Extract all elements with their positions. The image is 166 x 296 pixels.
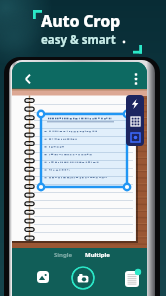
button[interactable]: Capture <box>71 266 95 290</box>
button[interactable]: Gallery <box>37 271 49 283</box>
staticText: Multiple <box>85 251 110 259</box>
staticText: easy & smart <box>41 32 116 48</box>
button[interactable]: More options <box>128 71 144 87</box>
button[interactable]: Grid <box>131 117 140 126</box>
staticText: Single <box>54 251 73 259</box>
staticText: Auto Crop <box>41 10 121 32</box>
button[interactable]: Single <box>52 250 75 260</box>
button[interactable]: Auto crop <box>131 133 140 142</box>
button[interactable]: Flash <box>130 99 140 109</box>
button[interactable]: Back <box>20 71 36 87</box>
button[interactable]: Preview <box>125 271 139 287</box>
button[interactable]: Multiple <box>83 250 112 260</box>
